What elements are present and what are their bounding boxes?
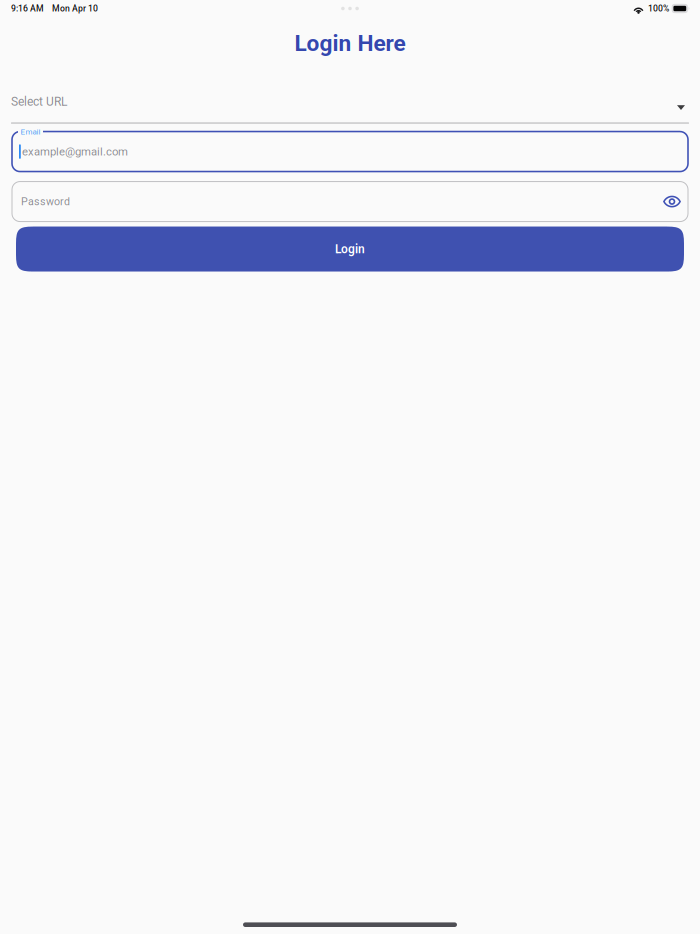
staticText: Email [20, 127, 40, 136]
staticText: Select URL [11, 95, 67, 109]
staticText: Login Here [294, 30, 405, 57]
staticText: 100% [648, 3, 669, 14]
button[interactable]: Password [12, 182, 688, 222]
staticText: Mon Apr 10 [52, 3, 98, 14]
button[interactable]: Select URL [11, 95, 689, 124]
button[interactable]: example@gmail.com [12, 132, 688, 172]
staticText: 9:16 AM [11, 3, 44, 14]
button[interactable]: Show password [659, 189, 685, 215]
staticText: Login [335, 242, 365, 256]
staticText: example@gmail.com [22, 145, 128, 158]
button[interactable]: Login [16, 227, 684, 272]
staticText: Password [21, 195, 70, 208]
